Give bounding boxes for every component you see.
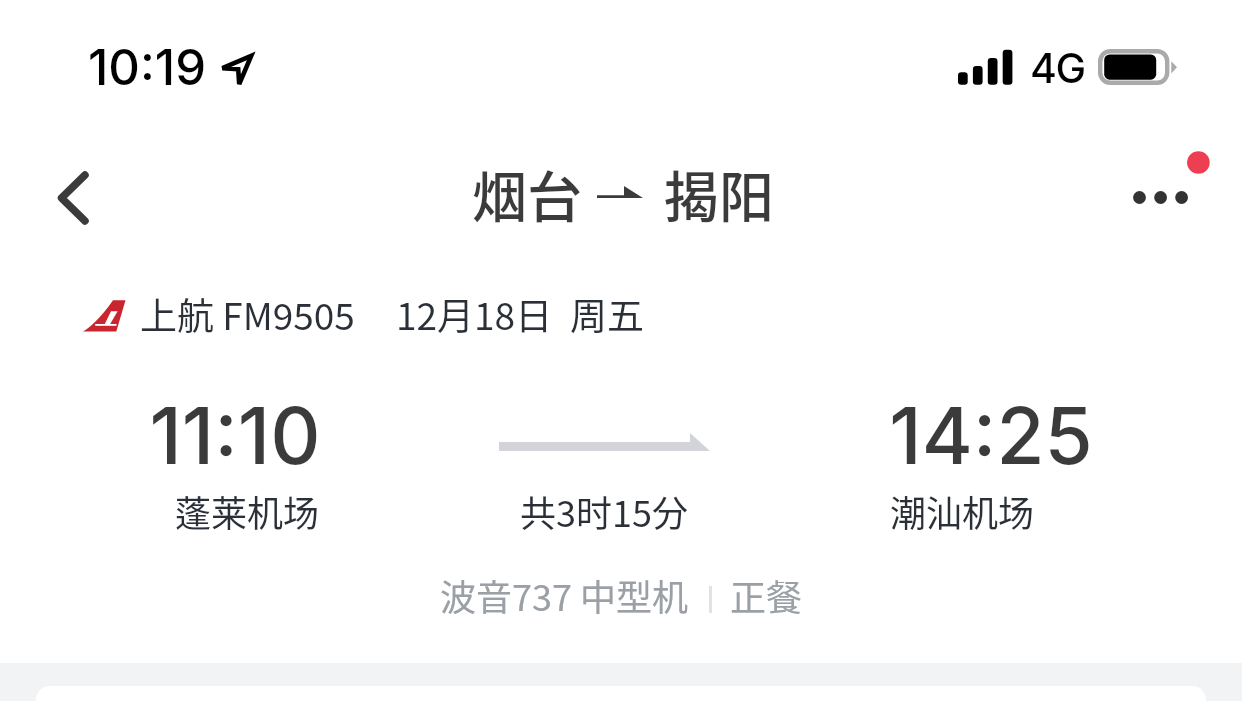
staticText: 4G (1030, 43, 1085, 93)
other: Location in use (219, 53, 255, 87)
staticText: 11:10 (0, 388, 856, 482)
staticText: 波音737 中型机 (440, 569, 689, 621)
staticText: 揭阳 (664, 153, 775, 233)
staticText: 10:19 (88, 38, 207, 97)
button[interactable]: 上航 FM9505 (0, 266, 1242, 663)
other: Battery full (1096, 46, 1182, 88)
button[interactable]: Back (22, 150, 118, 246)
staticText: 蓬莱机场 (0, 485, 868, 537)
staticText: 烟台 (472, 153, 583, 233)
other: Signal strength (958, 46, 1016, 86)
staticText: 14:25 (370, 388, 1242, 482)
staticText: 上航 FM9505 (140, 287, 355, 341)
staticText: 潮汕机场 (341, 485, 1242, 537)
button[interactable]: More options (1118, 148, 1222, 252)
staticText: 周五 (570, 287, 644, 341)
staticText: 12月18日 (396, 287, 553, 341)
staticText: 正餐 (730, 569, 803, 621)
staticText: 共3时15分 (0, 485, 1225, 537)
